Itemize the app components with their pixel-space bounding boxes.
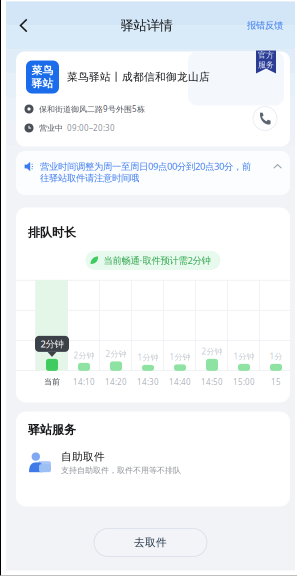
staticText: 菜鸟驿站丨成都信和御龙山店 (67, 70, 210, 83)
staticText: 驿站服务 (28, 422, 76, 437)
staticText: 支持自助取件，取件不用等不排队 (61, 465, 181, 475)
staticText: 服务 (258, 60, 274, 70)
staticText: 2分钟 (73, 350, 94, 361)
staticText: 1分 (269, 351, 282, 362)
staticText: 驿站详情 (120, 17, 172, 34)
staticText: 14:10 (73, 377, 95, 387)
staticText: 菜鸟 (31, 64, 53, 77)
staticText: 14:30 (137, 377, 159, 387)
staticText: 营业中 (39, 123, 63, 133)
staticText: 1分钟 (169, 352, 190, 362)
staticText: 2分钟 (201, 346, 222, 357)
button[interactable]: 返回 (6, 9, 60, 41)
staticText: 15 (271, 377, 281, 387)
staticText: 保和街道御风二路9号外围5栋 (39, 104, 145, 114)
staticText: 09:00–20:30 (67, 123, 115, 133)
button[interactable]: 报错反馈 (233, 9, 295, 41)
button[interactable]: 去取件 (94, 528, 207, 556)
button[interactable]: 自助取件 (16, 450, 290, 475)
button[interactable]: 拨打电话 (240, 101, 290, 135)
staticText: 去取件 (134, 536, 167, 549)
staticText: 当前 (44, 377, 60, 387)
staticText: 1分钟 (233, 351, 254, 362)
button[interactable]: 营业时间调整为周一至周日09点00分到20点30分，前往驿站取件请注意时间哦 (16, 155, 290, 199)
staticText: 14:50 (201, 377, 223, 387)
staticText: 1分钟 (137, 352, 158, 363)
staticText: 2分钟 (105, 349, 126, 359)
staticText: 15:00 (233, 377, 255, 387)
staticText: 官方 (258, 50, 274, 60)
staticText: 排队时长 (28, 225, 76, 240)
staticText: 营业时间调整为周一至周日09点00分到20点30分，前往驿站取件请注意时间哦 (40, 160, 251, 184)
staticText: 14:20 (105, 377, 127, 387)
staticText: 自助取件 (61, 450, 105, 463)
staticText: 2分钟 (40, 338, 63, 350)
staticText: 报错反馈 (247, 20, 283, 31)
staticText: 14:40 (169, 377, 191, 387)
staticText: 当前畅通·取件预计需2分钟 (103, 254, 210, 267)
staticText: 驿站 (31, 77, 53, 90)
